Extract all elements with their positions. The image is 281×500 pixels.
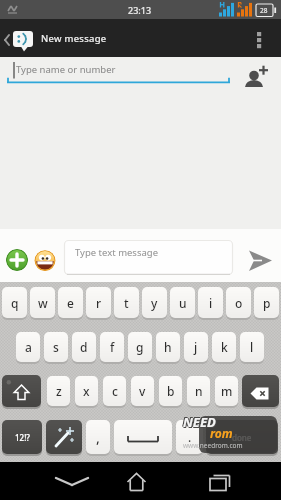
staticText: p <box>263 295 271 311</box>
staticText: New message <box>41 32 107 45</box>
staticText: g <box>136 339 144 355</box>
button[interactable]: 12!? <box>2 420 42 454</box>
staticText: 28 <box>260 6 268 15</box>
staticText: f <box>110 339 115 355</box>
button[interactable]: done <box>206 420 278 454</box>
button[interactable]: , <box>86 420 110 454</box>
staticText: m <box>221 383 233 399</box>
staticText: x <box>83 383 90 399</box>
button[interactable] <box>240 57 281 91</box>
button[interactable] <box>6 249 28 271</box>
button[interactable]: n <box>187 376 210 406</box>
staticText: d <box>80 339 88 355</box>
staticText: NEED <box>182 412 215 430</box>
button[interactable] <box>112 462 161 500</box>
staticText: j <box>194 339 198 355</box>
button[interactable]: j <box>184 332 208 362</box>
button[interactable] <box>190 462 246 500</box>
button[interactable]: s <box>44 332 68 362</box>
staticText: done <box>232 432 252 443</box>
staticText: k <box>221 339 228 355</box>
button[interactable]: a <box>16 332 40 362</box>
button[interactable]: l <box>240 332 264 362</box>
staticText: c <box>112 383 118 399</box>
staticText: n <box>195 383 203 399</box>
staticText: 12!? <box>15 432 30 443</box>
staticText: a <box>25 339 32 355</box>
staticText: Type text message <box>75 246 159 259</box>
button[interactable]: u <box>170 287 195 318</box>
button[interactable]: i <box>198 287 223 318</box>
button[interactable]: x <box>75 376 98 406</box>
staticText: r <box>96 295 102 311</box>
staticText: NEED <box>183 413 216 431</box>
staticText: s <box>53 339 59 355</box>
staticText: NEED <box>183 412 216 430</box>
button[interactable]: k <box>212 332 236 362</box>
staticText: u <box>179 295 187 311</box>
staticText: NEED <box>182 413 215 431</box>
button[interactable]: . <box>176 420 203 454</box>
button[interactable]: f <box>100 332 124 362</box>
button[interactable] <box>46 420 82 454</box>
button[interactable]: y <box>142 287 167 318</box>
staticText: o <box>235 295 243 311</box>
button[interactable] <box>64 240 233 275</box>
button[interactable] <box>114 420 172 454</box>
staticText: NEED <box>184 413 217 431</box>
staticText: v <box>139 383 146 399</box>
staticText: z <box>56 383 62 399</box>
staticText: t <box>124 295 129 311</box>
staticText: h <box>164 339 172 355</box>
staticText: NEED <box>184 414 217 432</box>
button[interactable]: t <box>114 287 139 318</box>
button[interactable]: w <box>30 287 55 318</box>
staticText: w <box>38 295 48 311</box>
button[interactable] <box>44 462 100 500</box>
staticText: NEED <box>183 414 216 432</box>
button[interactable] <box>248 19 281 57</box>
button[interactable] <box>242 375 279 407</box>
button[interactable] <box>238 243 278 278</box>
staticText: q <box>11 295 19 311</box>
button[interactable]: r <box>86 287 111 318</box>
button[interactable]: q <box>2 287 27 318</box>
staticText: i <box>209 295 213 311</box>
staticText: www.needrom.com <box>183 441 243 450</box>
staticText: 23:13 <box>128 4 152 16</box>
staticText: y <box>151 295 158 311</box>
button[interactable]: e <box>58 287 83 318</box>
button[interactable]: z <box>47 376 70 406</box>
staticText: e <box>67 295 74 311</box>
staticText: l <box>250 339 254 355</box>
button[interactable]: d <box>72 332 96 362</box>
button[interactable]: g <box>128 332 152 362</box>
button[interactable]: p <box>254 287 279 318</box>
button[interactable]: h <box>156 332 180 362</box>
staticText: rom <box>210 425 233 441</box>
button[interactable]: m <box>215 376 238 406</box>
button[interactable]: v <box>131 376 154 406</box>
button[interactable] <box>0 57 240 91</box>
button[interactable] <box>34 250 56 272</box>
button[interactable]: b <box>159 376 182 406</box>
button[interactable]: c <box>103 376 126 406</box>
button[interactable]: o <box>226 287 251 318</box>
staticText: b <box>167 383 175 399</box>
staticText: , <box>96 428 100 447</box>
button[interactable] <box>2 375 41 407</box>
staticText: . <box>188 429 192 445</box>
staticText: Type name or number <box>16 63 116 76</box>
button[interactable] <box>0 19 42 57</box>
